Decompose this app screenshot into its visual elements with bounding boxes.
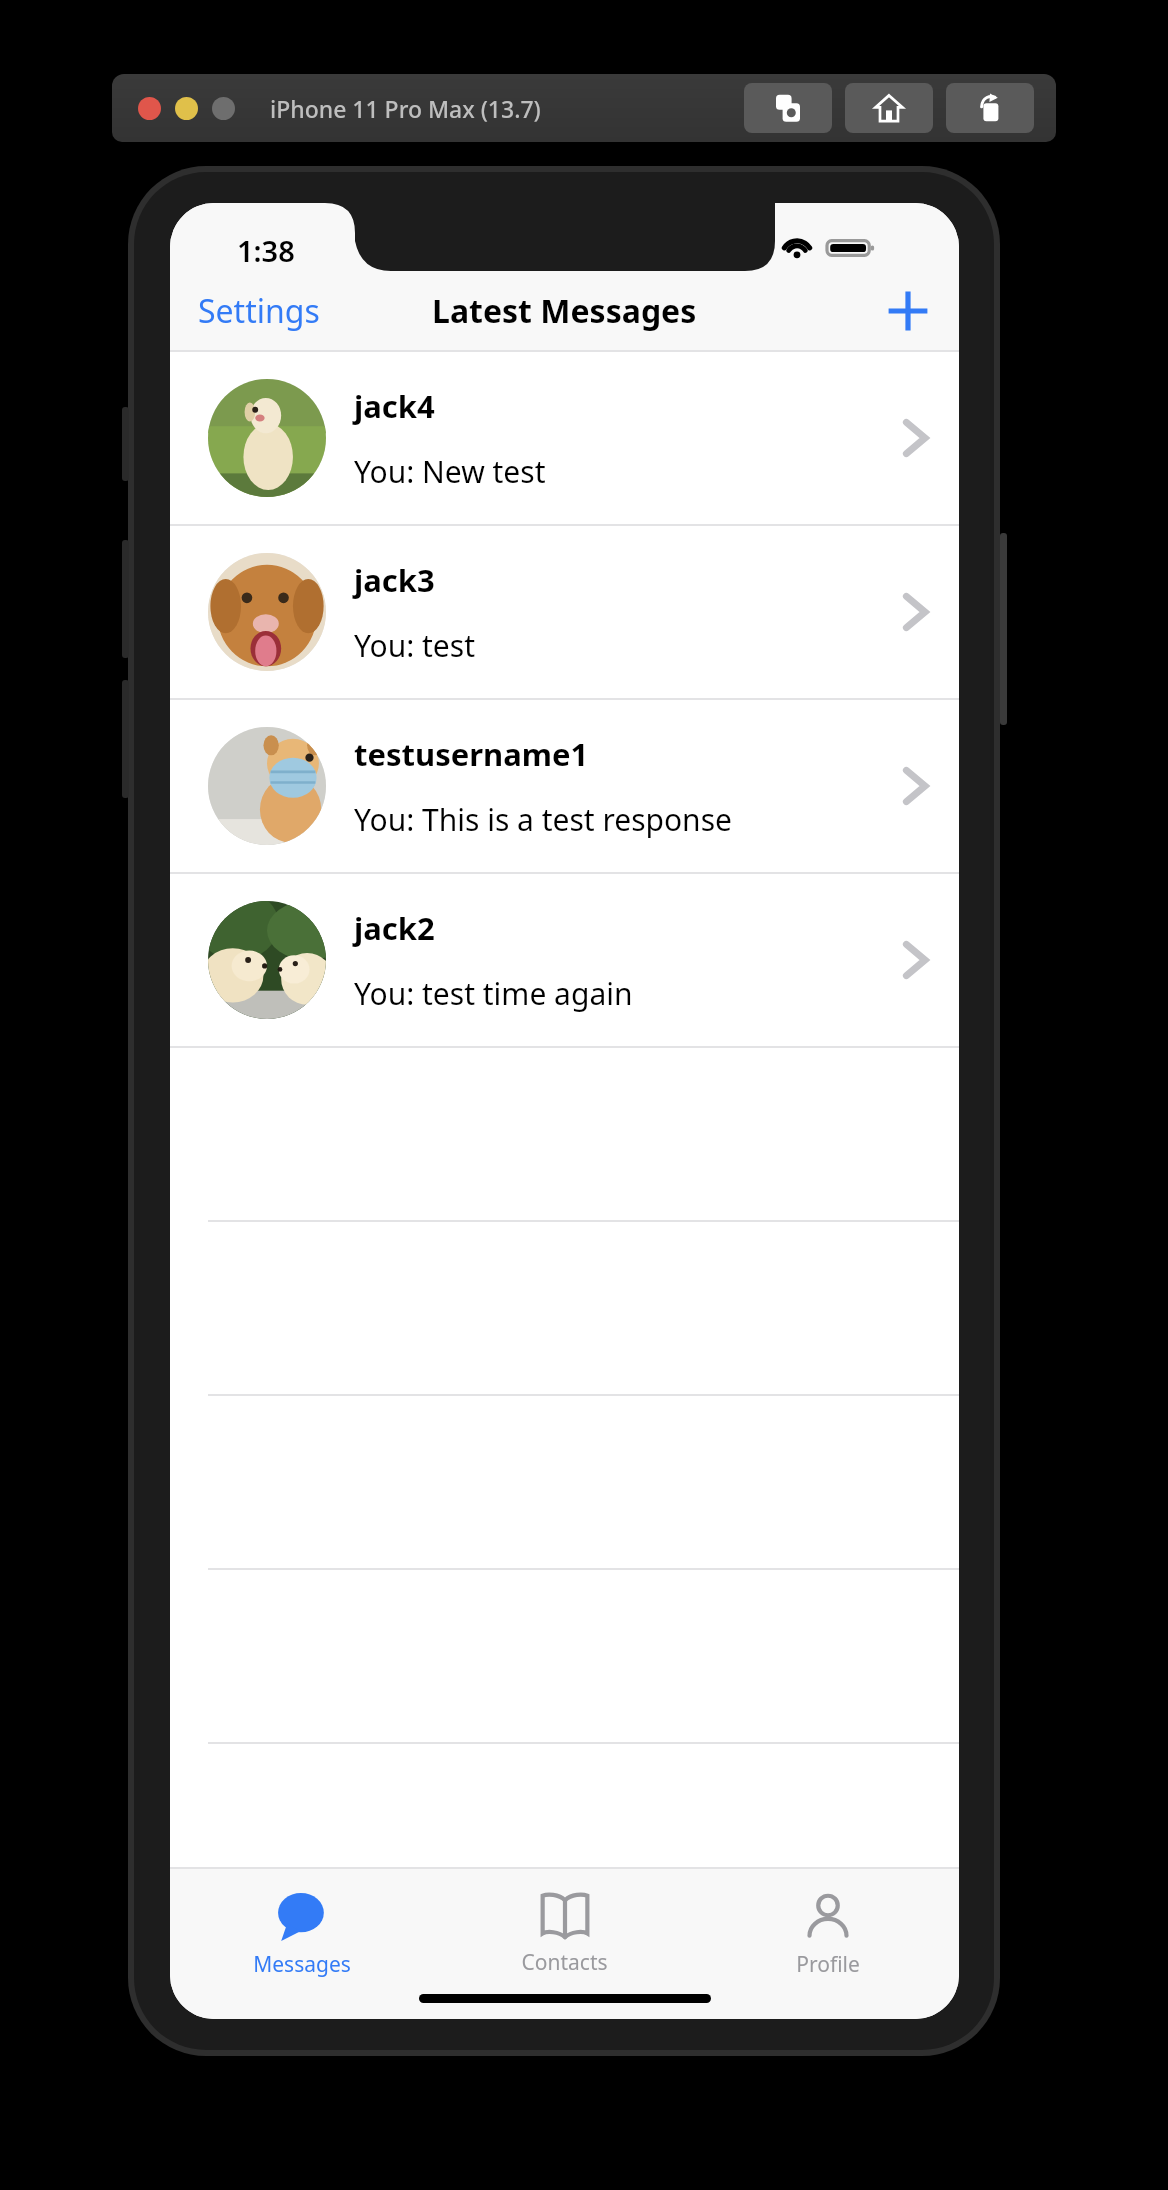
button[interactable]: New message <box>877 280 939 342</box>
staticText: You: New test <box>354 451 546 492</box>
button[interactable]: Window control <box>212 97 235 120</box>
button[interactable]: jack4 <box>170 352 959 524</box>
staticText: jack4 <box>354 385 435 427</box>
button[interactable]: Profile <box>696 1887 959 1985</box>
staticText: Profile <box>796 1950 860 1979</box>
button[interactable]: Window control <box>175 97 198 120</box>
staticText: jack2 <box>354 907 435 949</box>
button[interactable]: Contacts <box>433 1887 696 1983</box>
staticText: jack3 <box>354 559 435 601</box>
staticText: Latest Messages <box>432 289 697 333</box>
button[interactable]: Screenshot <box>744 83 832 133</box>
button[interactable]: Share <box>946 83 1034 133</box>
staticText: You: test time again <box>354 973 633 1014</box>
staticText: Contacts <box>521 1948 608 1977</box>
button[interactable]: Window control <box>138 97 161 120</box>
staticText: iPhone 11 Pro Max (13.7) <box>270 93 541 124</box>
button[interactable]: Messages <box>170 1887 433 1985</box>
button[interactable]: Settings <box>184 281 334 341</box>
button[interactable]: Home <box>845 83 933 133</box>
staticText: 1:38 <box>237 231 295 270</box>
staticText: Messages <box>253 1950 351 1979</box>
button[interactable]: jack2 <box>170 874 959 1046</box>
staticText: testusername1 <box>354 733 589 775</box>
button[interactable]: jack3 <box>170 526 959 698</box>
staticText: You: This is a test response <box>354 799 732 840</box>
staticText: You: test <box>354 625 475 666</box>
staticText: Settings <box>198 289 320 333</box>
button[interactable]: testusername1 <box>170 700 959 872</box>
